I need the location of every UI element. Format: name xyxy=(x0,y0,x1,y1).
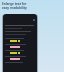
staticText: easy readability xyxy=(2,6,27,10)
staticText: Enlarge text for xyxy=(2,2,27,6)
